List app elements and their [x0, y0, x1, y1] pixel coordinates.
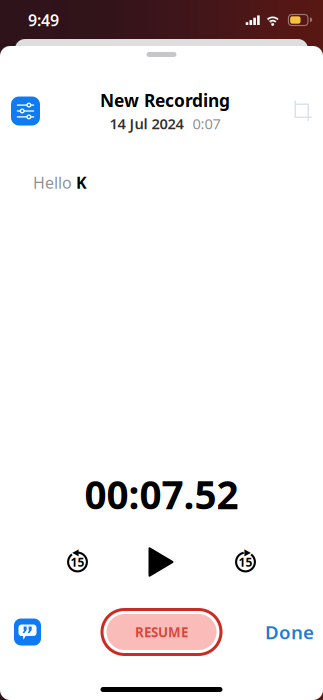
button[interactable]: Skip back 15 seconds — [55, 540, 99, 584]
button[interactable]: Skip forward 15 seconds — [223, 540, 267, 584]
button[interactable]: Play — [137, 540, 185, 584]
staticText: New Recording — [100, 89, 230, 112]
staticText: 15 — [70, 554, 84, 570]
staticText: 15 — [238, 554, 252, 570]
staticText: RESUME — [135, 623, 188, 641]
button[interactable]: Done — [265, 610, 314, 654]
button[interactable]: Audio settings — [11, 96, 40, 125]
button[interactable]: Trim recording — [287, 96, 317, 126]
staticText: 14 Jul 2024 — [109, 114, 183, 133]
button[interactable]: Show transcript — [14, 618, 41, 645]
staticText: Done — [265, 620, 314, 644]
staticText: 0:07 — [192, 114, 220, 133]
staticText: K — [76, 172, 87, 193]
button[interactable]: RESUME — [100, 608, 222, 656]
staticText: 00:07.52 — [84, 469, 238, 520]
staticText: 9:49 — [28, 9, 59, 31]
staticText: Hello — [33, 172, 76, 193]
